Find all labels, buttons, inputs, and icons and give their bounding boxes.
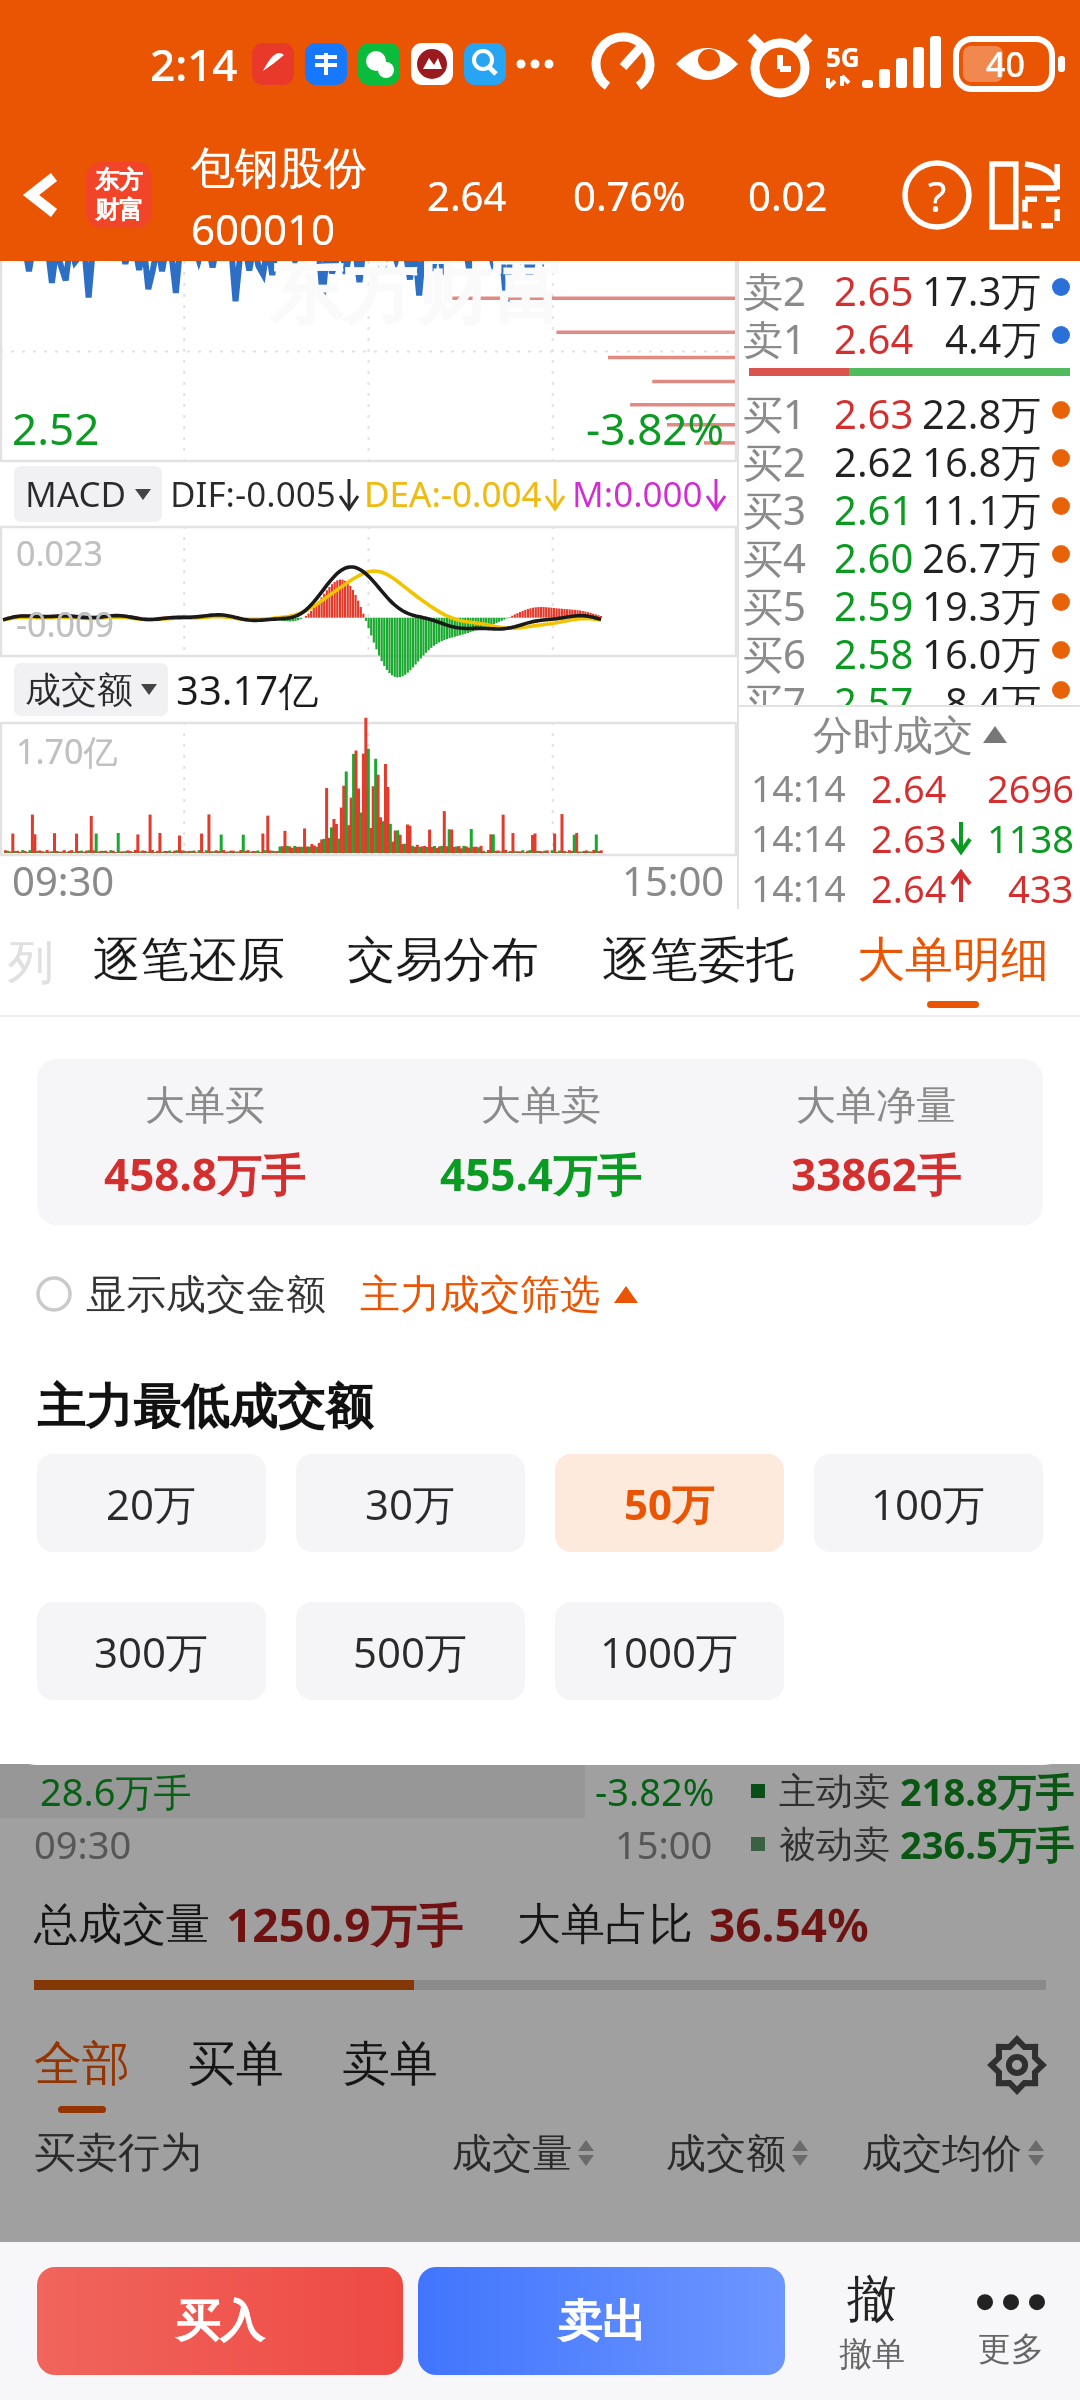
staticText: 17.3万: [922, 263, 1042, 311]
staticText: 14:14: [751, 762, 846, 812]
staticText: 16.8万: [922, 434, 1042, 482]
staticText: 2.64: [871, 862, 947, 909]
staticText: 成交均价: [862, 2128, 1022, 2178]
staticText: 2.60: [834, 530, 914, 578]
button[interactable]: 逐笔还原: [62, 909, 316, 1017]
staticText: 2.62: [834, 434, 914, 482]
staticText: 4.4万: [945, 311, 1042, 359]
staticText: 30万: [365, 1475, 456, 1532]
staticText: 36.54%: [709, 1893, 869, 1956]
button[interactable]: 成交额: [14, 663, 168, 716]
staticText: 成交额: [25, 667, 133, 712]
button[interactable]: 买6: [743, 626, 1070, 674]
staticText: 东方财富: [269, 261, 565, 338]
staticText: 33.17亿: [176, 662, 319, 717]
button[interactable]: 14:14: [751, 862, 1074, 909]
button[interactable]: 20万: [37, 1454, 266, 1552]
staticText: 买1: [743, 386, 806, 434]
staticText: 买入: [176, 2294, 264, 2349]
button[interactable]: 卖1: [743, 311, 1070, 359]
staticText: 2.63: [834, 386, 914, 434]
button[interactable]: 买单: [188, 2034, 284, 2094]
staticText: 09:30: [12, 853, 115, 907]
staticText: 撤: [847, 2268, 897, 2331]
button[interactable]: 买入: [37, 2267, 403, 2375]
staticText: 458.8万手: [104, 1144, 306, 1204]
button[interactable]: Settings: [988, 2038, 1046, 2092]
button[interactable]: 卖2: [743, 263, 1070, 311]
button[interactable]: 撤: [802, 2268, 942, 2375]
staticText: 显示成交金额: [86, 1269, 326, 1319]
staticText: -3.82%: [586, 398, 725, 458]
staticText: 236.5万手: [900, 1818, 1074, 1870]
button[interactable]: 交易分布: [316, 909, 570, 1017]
button[interactable]: 30万: [296, 1454, 525, 1552]
button[interactable]: Back: [0, 128, 86, 261]
staticText: 33862手: [791, 1144, 961, 1204]
staticText: 0.76%: [573, 168, 686, 222]
staticText: 买6: [743, 626, 806, 674]
staticText: 东方: [95, 165, 143, 195]
staticText: 5G: [826, 39, 860, 74]
button[interactable]: 显示成交金额: [36, 1269, 326, 1319]
button[interactable]: 逐笔委托: [570, 909, 825, 1017]
staticText: 2:14: [150, 34, 238, 94]
button[interactable]: 买3: [743, 482, 1070, 530]
staticText: 全部: [34, 2034, 130, 2094]
staticText: 2.64: [834, 311, 914, 359]
staticText: 2.64: [427, 168, 507, 222]
button[interactable]: 卖单: [342, 2034, 438, 2094]
button[interactable]: 14:14: [751, 762, 1074, 812]
staticText: 主力最低成交额: [37, 1377, 373, 1437]
button[interactable]: 大单买: [37, 1059, 1043, 1225]
staticText: 2.59: [834, 578, 914, 626]
button[interactable]: 分时成交: [739, 707, 1080, 762]
staticText: 2.63: [871, 812, 947, 862]
staticText: 大单占比: [517, 1897, 693, 1952]
staticText: 1000万: [600, 1623, 739, 1680]
button[interactable]: 买4: [743, 530, 1070, 578]
button[interactable]: 50万: [555, 1454, 784, 1552]
button[interactable]: 全部: [34, 2034, 130, 2113]
button[interactable]: 卖出: [418, 2267, 785, 2375]
button[interactable]: Help: [894, 152, 980, 238]
staticText: 28.6万手: [40, 1765, 192, 1817]
staticText: 14:14: [751, 812, 846, 862]
staticText: 成交额: [666, 2128, 786, 2178]
staticText: 大单净量: [796, 1080, 956, 1130]
staticText: 卖单: [342, 2034, 438, 2094]
staticText: 16.0万: [922, 626, 1042, 674]
staticText: 买4: [743, 530, 806, 578]
staticText: 大单买: [145, 1080, 265, 1130]
staticText: DEA:-0.004: [364, 470, 542, 518]
staticText: -0.009: [16, 601, 114, 647]
button[interactable]: 买5: [743, 578, 1070, 626]
staticText: 22.8万: [922, 386, 1042, 434]
button[interactable]: 列: [0, 909, 62, 1017]
staticText: 300万: [94, 1623, 209, 1680]
button[interactable]: 14:14: [751, 812, 1074, 862]
button[interactable]: 买1: [743, 386, 1070, 434]
button[interactable]: Switch layout: [982, 152, 1068, 238]
staticText: 包钢股份: [191, 141, 367, 196]
staticText: 218.8万手: [900, 1765, 1074, 1817]
staticText: 主动卖: [779, 1768, 890, 1815]
staticText: 14:14: [751, 862, 846, 909]
button[interactable]: 500万: [296, 1602, 525, 1700]
button[interactable]: 更多: [942, 2272, 1080, 2370]
staticText: 2.64: [871, 762, 947, 812]
button[interactable]: 大单明细: [825, 909, 1080, 1017]
staticText: 433: [1008, 862, 1074, 909]
button[interactable]: 300万: [37, 1602, 266, 1700]
button[interactable]: 1000万: [555, 1602, 784, 1700]
staticText: 列: [8, 934, 54, 992]
staticText: 1250.9万手: [226, 1893, 463, 1956]
button[interactable]: 买2: [743, 434, 1070, 482]
staticText: 15:00: [615, 1818, 713, 1870]
button[interactable]: 买7: [743, 674, 1070, 705]
staticText: 逐笔委托: [602, 930, 794, 990]
button[interactable]: 100万: [814, 1454, 1043, 1552]
staticText: 09:30: [34, 1818, 132, 1870]
button[interactable]: MACD: [14, 466, 162, 522]
button[interactable]: 主力成交筛选: [360, 1269, 638, 1319]
